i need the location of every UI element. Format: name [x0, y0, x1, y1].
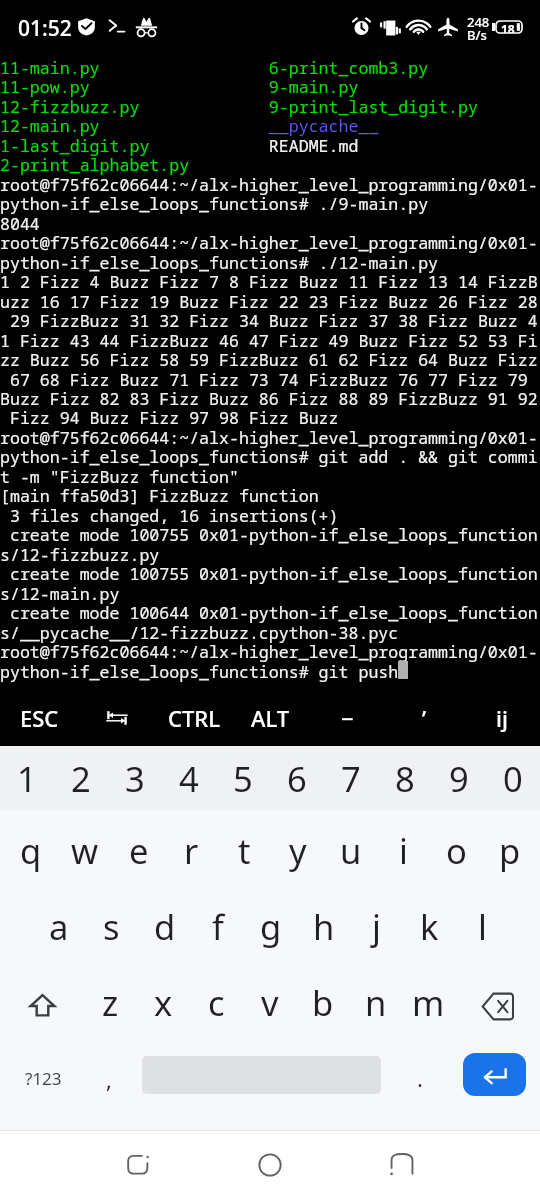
staticText: 248: [467, 13, 490, 31]
button[interactable]: j: [350, 886, 403, 961]
staticText: 01:52: [18, 14, 72, 43]
button[interactable]: ,: [86, 1038, 132, 1129]
button[interactable]: Home: [204, 1130, 336, 1200]
button[interactable]: a: [32, 886, 85, 961]
staticText: 9: [449, 755, 469, 802]
button[interactable]: f: [191, 886, 244, 961]
staticText: 29 FizzBuzz 31 32 Fizz 34 Buzz Fizz 37 3…: [0, 309, 538, 332]
staticText: h: [313, 903, 335, 950]
button[interactable]: ALT: [232, 695, 309, 746]
staticText: 3: [125, 755, 145, 802]
button[interactable]: 2: [54, 746, 108, 811]
button[interactable]: Enter: [449, 1038, 540, 1129]
button[interactable]: b: [296, 961, 349, 1038]
button[interactable]: z: [84, 961, 137, 1038]
staticText: j: [372, 903, 381, 950]
button[interactable]: q: [4, 811, 58, 886]
staticText: 11-pow.py 9-main.py: [0, 75, 359, 98]
staticText: f: [212, 903, 224, 950]
button[interactable]: h: [297, 886, 350, 961]
staticText: root@f75f62c06644:~/alx-higher_level_pro…: [0, 231, 538, 254]
button[interactable]: t: [218, 811, 271, 886]
staticText: ,: [106, 1064, 112, 1094]
staticText: 12-fizzbuzz.py 9-print_last_digit.py: [0, 95, 478, 118]
button[interactable]: m: [402, 961, 455, 1038]
button[interactable]: k: [403, 886, 456, 961]
button[interactable]: 3: [108, 746, 162, 811]
button[interactable]: w: [58, 811, 112, 886]
button[interactable]: l: [456, 886, 509, 961]
button[interactable]: 1: [0, 746, 54, 811]
staticText: −: [341, 703, 354, 733]
staticText: CTRL: [168, 703, 220, 733]
button[interactable]: 6: [270, 746, 324, 811]
staticText: y: [289, 827, 307, 874]
button[interactable]: 7: [324, 746, 378, 811]
button[interactable]: Recents: [72, 1130, 204, 1200]
button[interactable]: ’: [386, 695, 463, 746]
staticText: s/12-main.py: [0, 582, 120, 605]
staticText: ?123: [25, 1067, 62, 1090]
button[interactable]: n: [349, 961, 402, 1038]
staticText: t: [238, 827, 251, 874]
button[interactable]: ij: [463, 695, 540, 746]
button[interactable]: Tab: [78, 695, 155, 746]
staticText: 1 2 Fizz 4 Buzz Fizz 7 8 Fizz Buzz 11 Fi…: [0, 270, 538, 293]
button[interactable]: d: [138, 886, 191, 961]
button[interactable]: r: [165, 811, 218, 886]
staticText: 7: [341, 755, 361, 802]
staticText: u: [340, 827, 362, 874]
staticText: create mode 100755 0x01-python-if_else_l…: [0, 523, 538, 546]
staticText: root@f75f62c06644:~/alx-higher_level_pro…: [0, 640, 538, 663]
staticText: b: [312, 979, 334, 1026]
staticText: Fizz 94 Buzz Fizz 97 98 Fizz Buzz: [0, 406, 339, 429]
staticText: 2: [71, 755, 91, 802]
staticText: c: [208, 979, 225, 1026]
button[interactable]: Back: [336, 1130, 468, 1200]
button[interactable]: v: [243, 961, 296, 1038]
staticText: k: [420, 903, 439, 950]
button[interactable]: g: [244, 886, 297, 961]
staticText: o: [446, 827, 467, 874]
button[interactable]: 5: [216, 746, 270, 811]
staticText: e: [129, 827, 149, 874]
button[interactable]: ESC: [0, 695, 78, 746]
button[interactable]: Shift: [0, 961, 84, 1038]
button[interactable]: 8: [378, 746, 432, 811]
button[interactable]: 0: [486, 746, 540, 811]
staticText: ALT: [251, 703, 290, 733]
staticText: python-if_else_loops_functions# git push: [0, 660, 399, 683]
button[interactable]: Space: [132, 1038, 390, 1129]
button[interactable]: Symbols: [0, 1038, 86, 1129]
staticText: python-if_else_loops_functions# ./9-main…: [0, 192, 429, 215]
button[interactable]: y: [271, 811, 324, 886]
button[interactable]: i: [377, 811, 430, 886]
staticText: uzz 16 17 Fizz 19 Buzz Fizz 22 23 Fizz B…: [0, 290, 538, 313]
staticText: 1-last_digit.py README.md: [0, 134, 359, 157]
button[interactable]: u: [324, 811, 377, 886]
button[interactable]: .: [390, 1038, 449, 1129]
button[interactable]: 4: [162, 746, 216, 811]
button[interactable]: x: [137, 961, 190, 1038]
staticText: .: [417, 1063, 423, 1093]
button[interactable]: p: [483, 811, 536, 886]
staticText: t -m "FizzBuzz function": [0, 465, 239, 488]
button[interactable]: c: [190, 961, 243, 1038]
staticText: v: [261, 979, 279, 1026]
staticText: n: [365, 979, 387, 1026]
button[interactable]: 9: [432, 746, 486, 811]
button[interactable]: o: [430, 811, 483, 886]
button[interactable]: CTRL: [155, 695, 232, 746]
staticText: ’: [422, 703, 427, 733]
staticText: 5: [233, 755, 253, 802]
staticText: 6: [287, 755, 307, 802]
button[interactable]: −: [309, 695, 386, 746]
staticText: z: [102, 979, 119, 1026]
staticText: 1 Fizz 43 44 FizzBuzz 46 47 Fizz 49 Buzz…: [0, 329, 538, 352]
button[interactable]: s: [85, 886, 138, 961]
staticText: 67 68 Fizz Buzz 71 Fizz 73 74 FizzBuzz 7…: [0, 368, 538, 391]
button[interactable]: Backspace: [455, 961, 540, 1038]
staticText: ESC: [20, 703, 59, 733]
staticText: 3 files changed, 16 insertions(+): [0, 504, 339, 527]
button[interactable]: e: [112, 811, 165, 886]
